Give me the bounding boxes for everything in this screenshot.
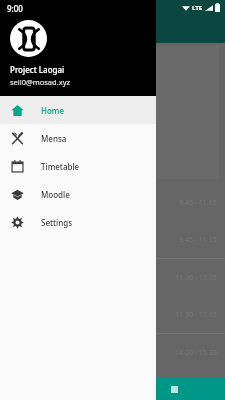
staticText: Settings — [41, 217, 73, 228]
staticText: LTE — [192, 4, 203, 12]
button[interactable]: Recent apps — [163, 378, 185, 400]
staticText: seil0@mosad.xyz — [10, 77, 71, 87]
staticText: 9.45 - 11.15 — [179, 235, 217, 245]
staticText: 14.00 - 15.30 — [175, 348, 217, 358]
staticText: 9:00 — [7, 3, 23, 14]
staticText: 9.45 - 11.15 — [179, 198, 217, 208]
staticText: 11.30 - 13.05 — [175, 310, 217, 320]
button[interactable]: Timetable — [0, 152, 156, 180]
button[interactable]: Mensa — [0, 124, 156, 152]
staticText: 11.30 - 13.05 — [175, 273, 217, 283]
staticText: Timetable — [41, 161, 80, 172]
button[interactable]: Moodle — [0, 180, 156, 208]
staticText: Mensa — [41, 133, 67, 144]
staticText: Moodle — [41, 189, 70, 200]
staticText: Home — [41, 105, 65, 116]
button[interactable]: Home — [0, 96, 156, 124]
button[interactable]: Settings — [0, 208, 156, 236]
staticText: Project Laogai — [10, 64, 65, 75]
